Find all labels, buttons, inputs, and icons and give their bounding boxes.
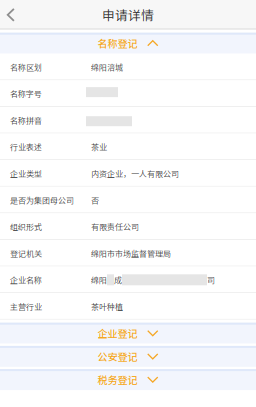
staticText: 茶叶种植 [91, 301, 123, 312]
staticText: 成 [114, 274, 122, 286]
staticText: 内资企业，一人有限公司 [91, 168, 179, 179]
staticText: 企业登记 [97, 326, 137, 340]
staticText: 有限责任公司 [91, 221, 139, 232]
staticText: 登记机关 [10, 247, 42, 259]
staticText: 绵阳 [91, 274, 107, 286]
button[interactable]: 名称登记 [0, 33, 256, 54]
staticText: 名称区划 [10, 61, 42, 73]
staticText: 名称拼音 [10, 114, 42, 126]
staticText: 否 [91, 194, 99, 206]
staticText: 名称登记 [97, 36, 137, 50]
staticText: 企业类型 [10, 168, 42, 179]
staticText: 企业名称 [10, 274, 42, 286]
staticText: 行业表述 [10, 141, 42, 153]
staticText: 组织形式 [10, 221, 42, 232]
staticText: 名称字号 [10, 88, 42, 99]
staticText: 申请详情 [102, 6, 154, 24]
staticText: 司 [207, 274, 215, 286]
button[interactable]: 企业登记 [0, 323, 256, 344]
staticText: 茶业 [91, 141, 107, 153]
staticText: 是否为集团母公司 [10, 194, 74, 206]
button[interactable]: 返回 [0, 0, 40, 30]
button[interactable]: 公安登记 [0, 346, 256, 367]
button[interactable]: 税务登记 [0, 369, 256, 390]
staticText: 税务登记 [97, 372, 137, 387]
staticText: 绵阳涪城 [91, 61, 123, 73]
staticText: 主营行业 [10, 301, 42, 312]
staticText: 公安登记 [97, 349, 137, 364]
staticText: 绵阳市市场监督管理局 [91, 247, 171, 259]
